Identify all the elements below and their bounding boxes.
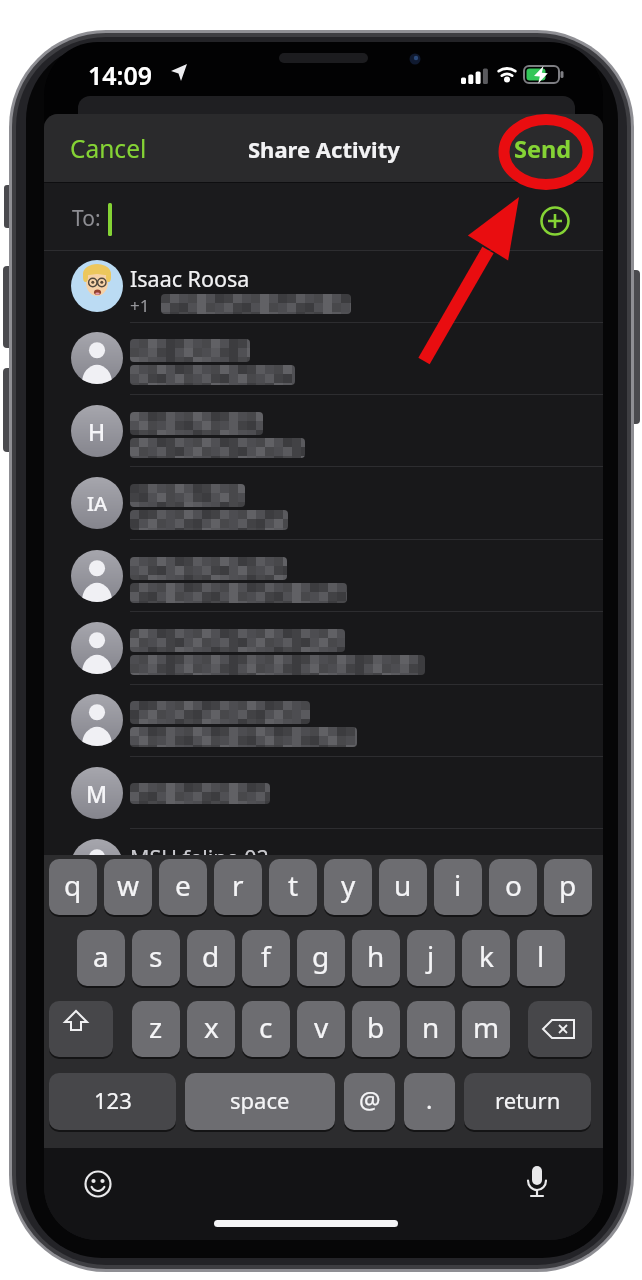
button[interactable]: . [404,1073,455,1130]
staticText: Send [514,133,572,165]
button[interactable]: f [242,930,290,986]
staticText: o [505,866,522,904]
button[interactable]: space [185,1073,335,1130]
button[interactable]: a [77,930,125,986]
button[interactable]: IA [44,467,603,539]
button[interactable]: return [464,1073,591,1130]
staticText: @ [359,1083,381,1116]
button[interactable]: s [132,930,180,986]
button[interactable] [44,540,603,612]
button[interactable]: t [269,859,317,915]
staticText: a [93,937,109,975]
button[interactable]: n [407,1001,455,1057]
button[interactable]: M [44,757,603,829]
staticText: IA [87,490,108,517]
staticText: d [202,937,220,975]
button[interactable]: i [434,859,482,915]
staticText: 14:09 [88,58,153,92]
button[interactable]: d [187,930,235,986]
button[interactable] [44,322,603,394]
button[interactable]: y [324,859,372,915]
staticText: H [88,416,106,447]
button[interactable]: l [517,930,565,986]
button[interactable]: j [407,930,455,986]
staticText: y [341,866,356,904]
staticText: return [495,1085,561,1115]
staticText: M [86,778,108,809]
staticText: s [149,937,163,975]
staticText: x [204,1008,219,1046]
staticText: k [479,937,494,975]
staticText: l [537,937,545,975]
button[interactable]: 123 [49,1073,176,1130]
button[interactable]: g [297,930,345,986]
button[interactable]: w [104,859,152,915]
staticText: Share Activity [248,134,400,164]
staticText: h [367,937,385,975]
button[interactable]: q [49,859,97,915]
button[interactable]: c [242,1001,290,1057]
button[interactable]: z [132,1001,180,1057]
button[interactable] [49,1001,113,1057]
staticText: Cancel [70,132,147,165]
button[interactable]: H [44,395,603,467]
staticText: q [64,866,82,904]
staticText: w [117,866,140,904]
staticText: space [230,1085,290,1115]
staticText: +1 [130,294,150,317]
staticText: f [261,937,271,975]
button[interactable]: m [462,1001,510,1057]
button[interactable]: k [462,930,510,986]
button[interactable]: p [544,859,592,915]
button[interactable]: v [297,1001,345,1057]
button[interactable]: b [352,1001,400,1057]
button[interactable] [44,612,603,684]
button[interactable] [528,1001,592,1057]
button[interactable]: x [187,1001,235,1057]
staticText: g [312,937,330,975]
button[interactable]: @ [344,1073,395,1130]
button[interactable]: Isaac Roosa [44,250,603,322]
button[interactable]: o [489,859,537,915]
button[interactable]: h [352,930,400,986]
staticText: To: [72,204,101,233]
staticText: MSU feline 02 [130,843,269,872]
button[interactable]: u [379,859,427,915]
button[interactable]: Cancel [70,114,147,183]
staticText: i [454,866,462,904]
staticText: c [259,1008,273,1046]
button[interactable]: e [159,859,207,915]
staticText: t [288,866,299,904]
staticText: u [394,866,412,904]
button[interactable]: r [214,859,262,915]
button[interactable] [522,1162,552,1202]
staticText: m [473,1008,500,1046]
button[interactable]: Send [514,114,572,183]
staticText: b [367,1008,385,1046]
staticText: j [427,937,435,975]
staticText: v [314,1008,329,1046]
staticText: r [232,866,244,904]
staticText: z [149,1008,163,1046]
staticText: Isaac Roosa [130,264,250,293]
staticText: n [422,1008,440,1046]
button[interactable] [44,684,603,756]
button[interactable] [538,204,572,238]
button[interactable]: MSU feline 02 [44,829,603,901]
staticText: . [426,1083,433,1116]
staticText: 123 [94,1085,132,1115]
button[interactable] [83,1169,113,1199]
staticText: e [175,866,191,904]
staticText: p [559,866,577,904]
